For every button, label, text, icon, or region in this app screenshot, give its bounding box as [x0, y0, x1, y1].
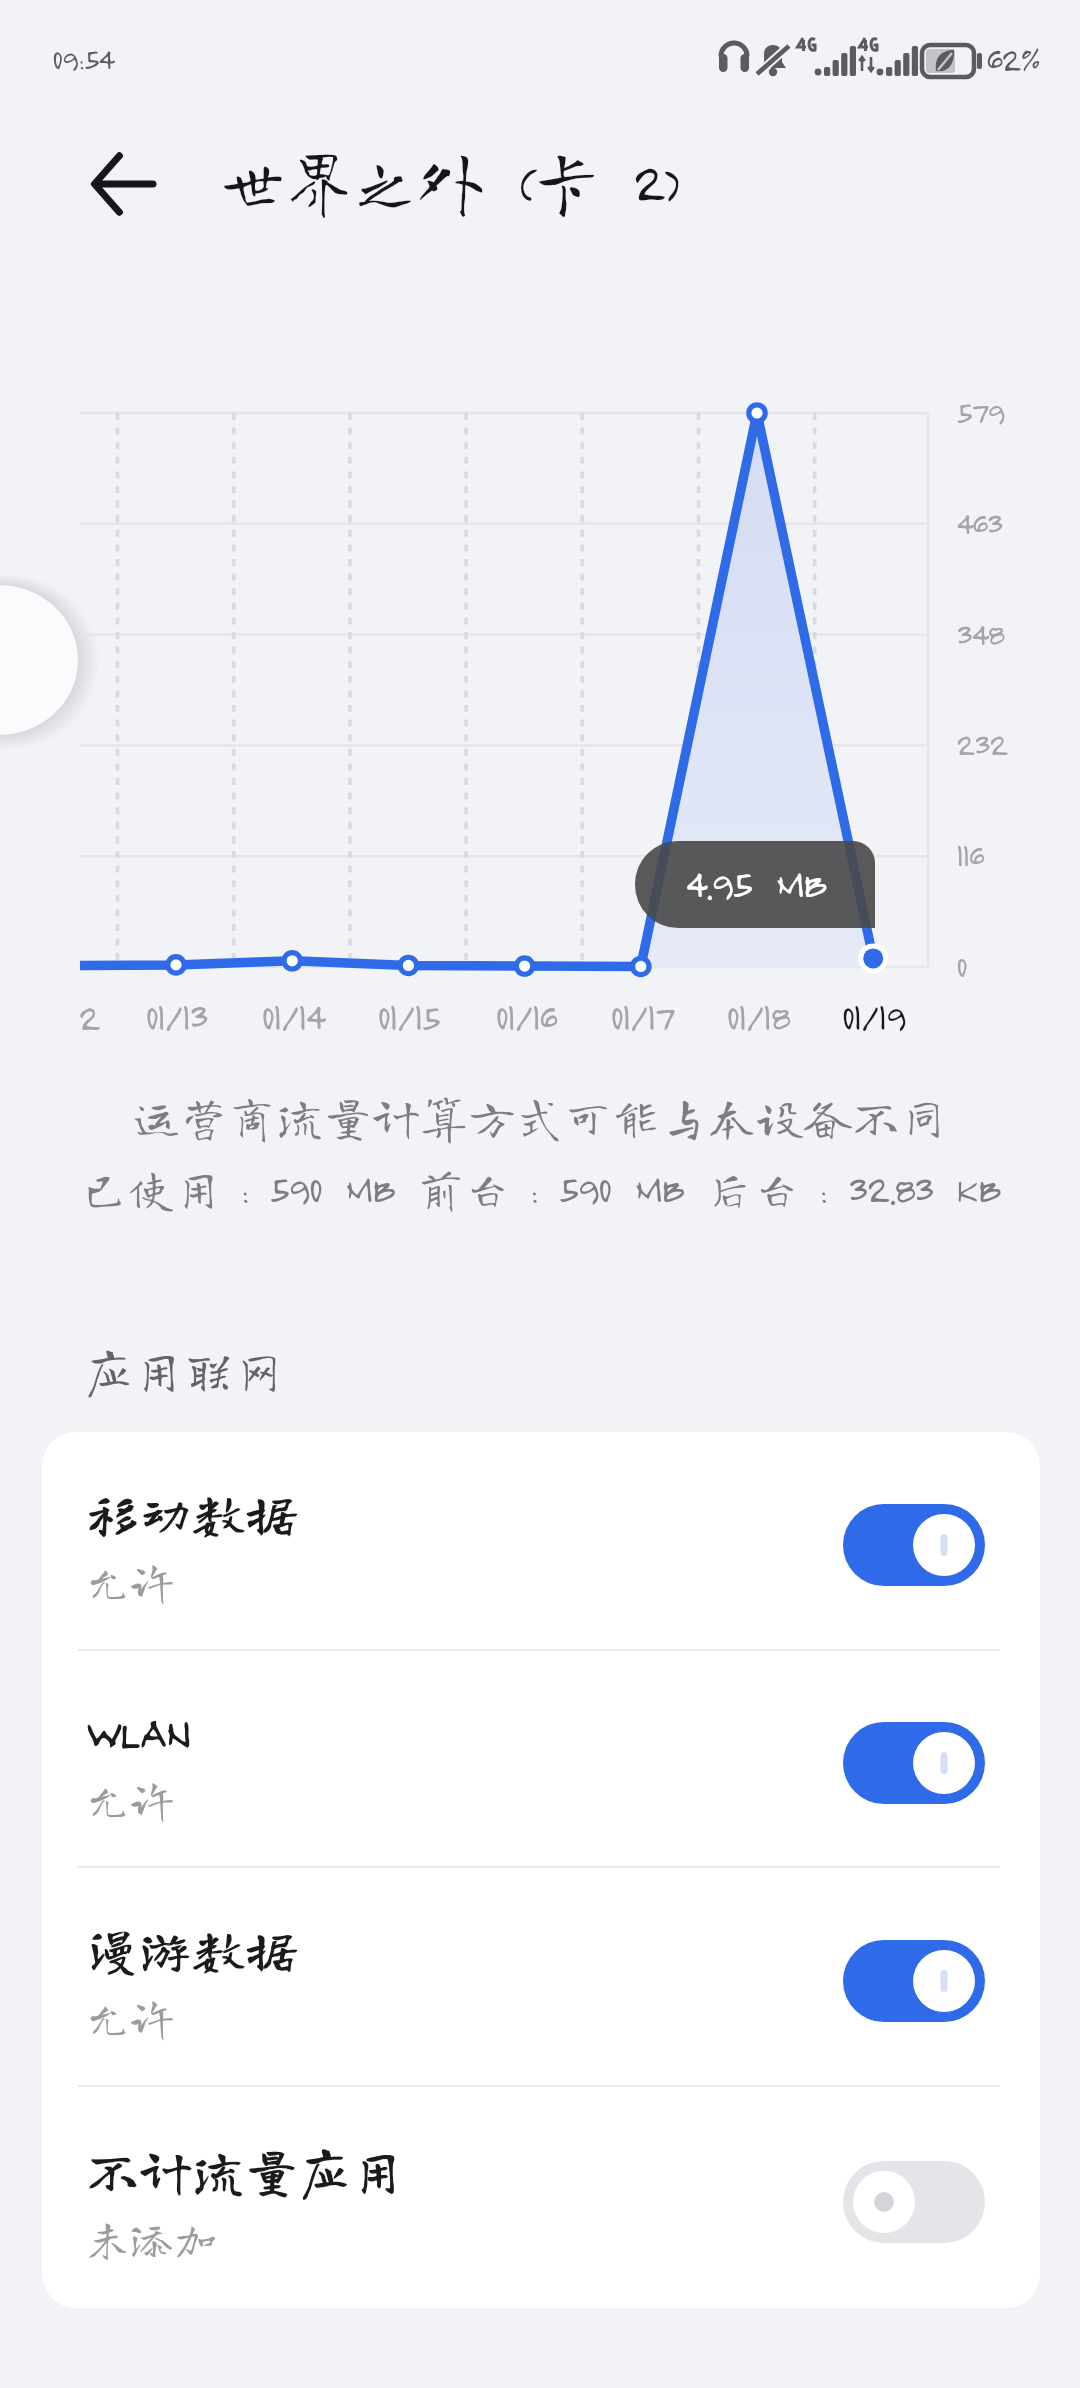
- staticText: 01/13: [145, 994, 207, 1038]
- staticText: 漫游数据: [87, 1922, 299, 1975]
- staticText: WLAN: [87, 1704, 190, 1757]
- staticText: 01/17: [610, 994, 673, 1038]
- staticText: 01/18: [726, 994, 789, 1038]
- button[interactable]: WLAN: [42, 1651, 1040, 1866]
- staticText: WLAN: [86, 1705, 189, 1758]
- button[interactable]: 移动数据: [42, 1432, 1040, 1649]
- staticText: 未添加: [86, 2216, 218, 2260]
- staticText: 2: [78, 994, 99, 1038]
- button[interactable]: Disabled: [843, 2161, 985, 2243]
- staticText: 116: [956, 836, 984, 874]
- staticText: 579: [956, 393, 1004, 431]
- staticText: 移动数据: [87, 1486, 299, 1539]
- button[interactable]: Open navigation drawer: [0, 545, 130, 775]
- button[interactable]: 漫游数据: [42, 1868, 1040, 2085]
- staticText: 不计流量应用: [86, 2143, 404, 2196]
- staticText: 允许: [86, 1777, 174, 1821]
- staticText: 移动数据: [86, 1487, 298, 1540]
- staticText: 允许: [86, 1995, 174, 2039]
- button[interactable]: Enabled: [843, 1940, 985, 2022]
- staticText: 允许: [86, 1559, 174, 1603]
- staticText: 09:54: [52, 40, 114, 76]
- button[interactable]: Back: [70, 131, 176, 237]
- staticText: 0: [956, 947, 967, 985]
- button[interactable]: Enabled: [843, 1504, 985, 1586]
- button[interactable]: Enabled: [843, 1722, 985, 1804]
- staticText: 232: [956, 725, 1007, 763]
- staticText: 世界之外 (卡 2): [220, 148, 680, 214]
- staticText: WLAN: [86, 1704, 189, 1757]
- staticText: 01/15: [377, 994, 439, 1038]
- staticText: 已使用：590 MB 前台：590 MB 后台：32.83 KB: [81, 1165, 1000, 1212]
- staticText: 漫游数据: [86, 1922, 298, 1975]
- staticText: 运营商流量计算方式可能与本设备不同: [132, 1093, 949, 1141]
- staticText: 应用联网: [84, 1345, 284, 1395]
- staticText: 01/14: [261, 994, 324, 1038]
- staticText: 4.95 MB: [685, 859, 826, 907]
- staticText: 不计流量应用: [86, 2144, 404, 2197]
- staticText: 01/19: [841, 994, 905, 1038]
- button[interactable]: 不计流量应用: [42, 2087, 1040, 2308]
- staticText: 01/16: [495, 994, 556, 1038]
- staticText: 不计流量应用: [87, 2143, 405, 2196]
- staticText: 移动数据: [86, 1486, 298, 1539]
- staticText: 62%: [986, 39, 1039, 79]
- staticText: 348: [956, 615, 1004, 653]
- staticText: 漫游数据: [86, 1923, 298, 1976]
- staticText: 463: [956, 504, 1002, 542]
